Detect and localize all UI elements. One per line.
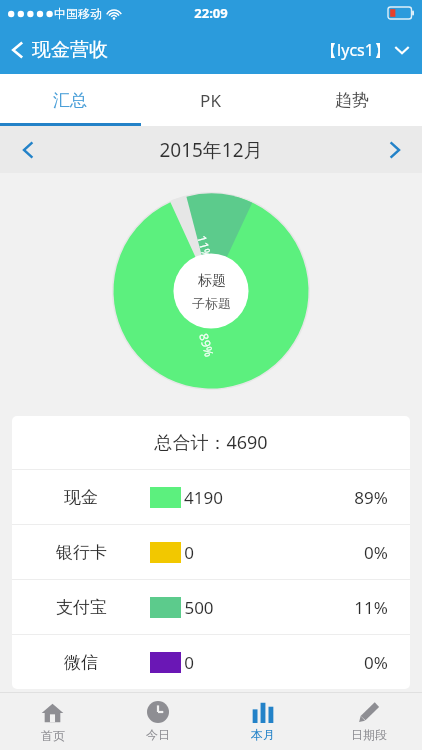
- other: Previous month: [22, 139, 35, 161]
- staticText: 银行卡: [56, 542, 107, 563]
- staticText: 89%: [196, 331, 218, 359]
- button[interactable]: 趋势: [281, 74, 422, 126]
- staticText: 0%: [364, 541, 388, 564]
- staticText: 中国移动: [54, 6, 102, 21]
- staticText: 支付宝: [56, 597, 107, 618]
- button[interactable]: 日期段: [316, 693, 422, 750]
- other: Next month: [388, 139, 401, 161]
- staticText: 89%: [354, 486, 388, 509]
- staticText: 首页: [41, 728, 65, 743]
- staticText: 11%: [354, 596, 388, 619]
- button[interactable]: Previous month: [0, 126, 56, 173]
- staticText: 现金营收: [32, 38, 108, 62]
- other: 今日: [147, 701, 169, 723]
- staticText: 0: [184, 651, 194, 674]
- staticText: 本月: [251, 727, 275, 742]
- staticText: 汇总: [53, 90, 87, 111]
- button[interactable]: 现金: [12, 470, 410, 524]
- other: Back: [12, 40, 24, 60]
- staticText: 微信: [64, 652, 98, 673]
- staticText: PK: [200, 89, 221, 112]
- button[interactable]: 今日: [105, 693, 210, 750]
- button[interactable]: 【lycs1】: [311, 33, 422, 67]
- staticText: 子标题: [192, 295, 231, 311]
- other: 本月: [252, 701, 274, 723]
- button[interactable]: Next month: [366, 126, 422, 173]
- button[interactable]: 银行卡: [12, 525, 410, 579]
- staticText: 日期段: [351, 727, 387, 742]
- staticText: 趋势: [335, 90, 369, 111]
- button[interactable]: 支付宝: [12, 580, 410, 634]
- other: 首页: [41, 701, 64, 724]
- staticText: 2015年12月: [159, 137, 263, 163]
- button[interactable]: 本月: [210, 693, 316, 750]
- other: 日期段: [358, 701, 380, 723]
- button[interactable]: 微信: [12, 635, 410, 689]
- staticText: 0%: [364, 651, 388, 674]
- staticText: 0: [184, 541, 194, 564]
- staticText: 11%: [194, 233, 216, 261]
- button[interactable]: Back: [0, 32, 120, 68]
- staticText: 标题: [198, 272, 226, 290]
- staticText: 今日: [146, 727, 170, 742]
- staticText: 现金: [64, 487, 98, 508]
- staticText: 500: [184, 596, 214, 619]
- staticText: 22:09: [194, 4, 228, 22]
- staticText: 总合计：4690: [154, 430, 268, 455]
- staticText: 【lycs1】: [321, 39, 390, 61]
- button[interactable]: 汇总: [0, 74, 140, 126]
- staticText: 4190: [184, 486, 223, 509]
- button[interactable]: 首页: [0, 693, 105, 750]
- button[interactable]: PK: [140, 74, 281, 126]
